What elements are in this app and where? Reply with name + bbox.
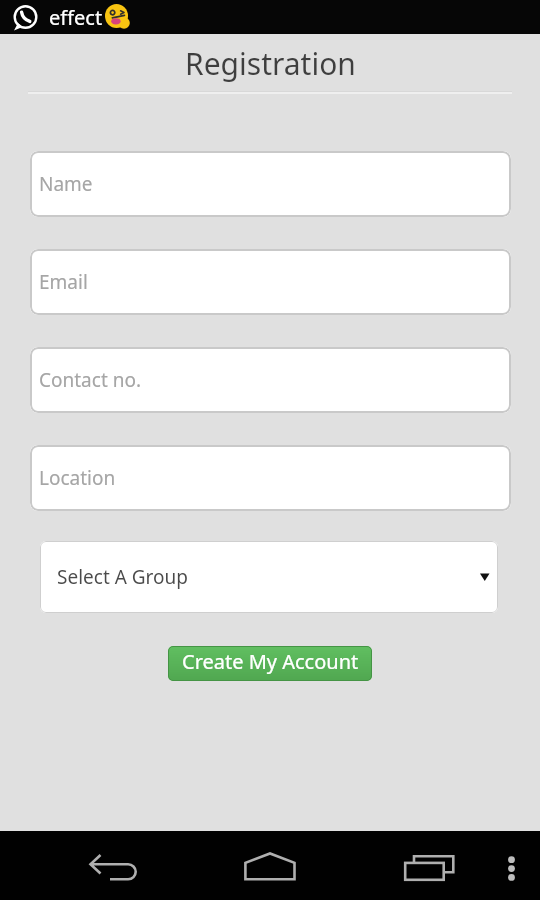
staticText: Registration (185, 43, 356, 84)
staticText: Create My Account (182, 648, 359, 675)
button[interactable]: Email (30, 249, 511, 315)
staticText: Name (39, 171, 93, 197)
button[interactable]: Location (30, 445, 511, 511)
staticText: Email (39, 269, 88, 295)
button[interactable]: Name (30, 151, 511, 217)
staticText: Location (39, 465, 116, 491)
button[interactable]: Select A Group (40, 541, 498, 613)
staticText: Contact no. (39, 367, 142, 393)
staticText: effect (49, 4, 103, 31)
staticText: Select A Group (57, 564, 188, 590)
button[interactable]: Contact no. (30, 347, 511, 413)
button[interactable]: Create My Account (168, 646, 372, 681)
